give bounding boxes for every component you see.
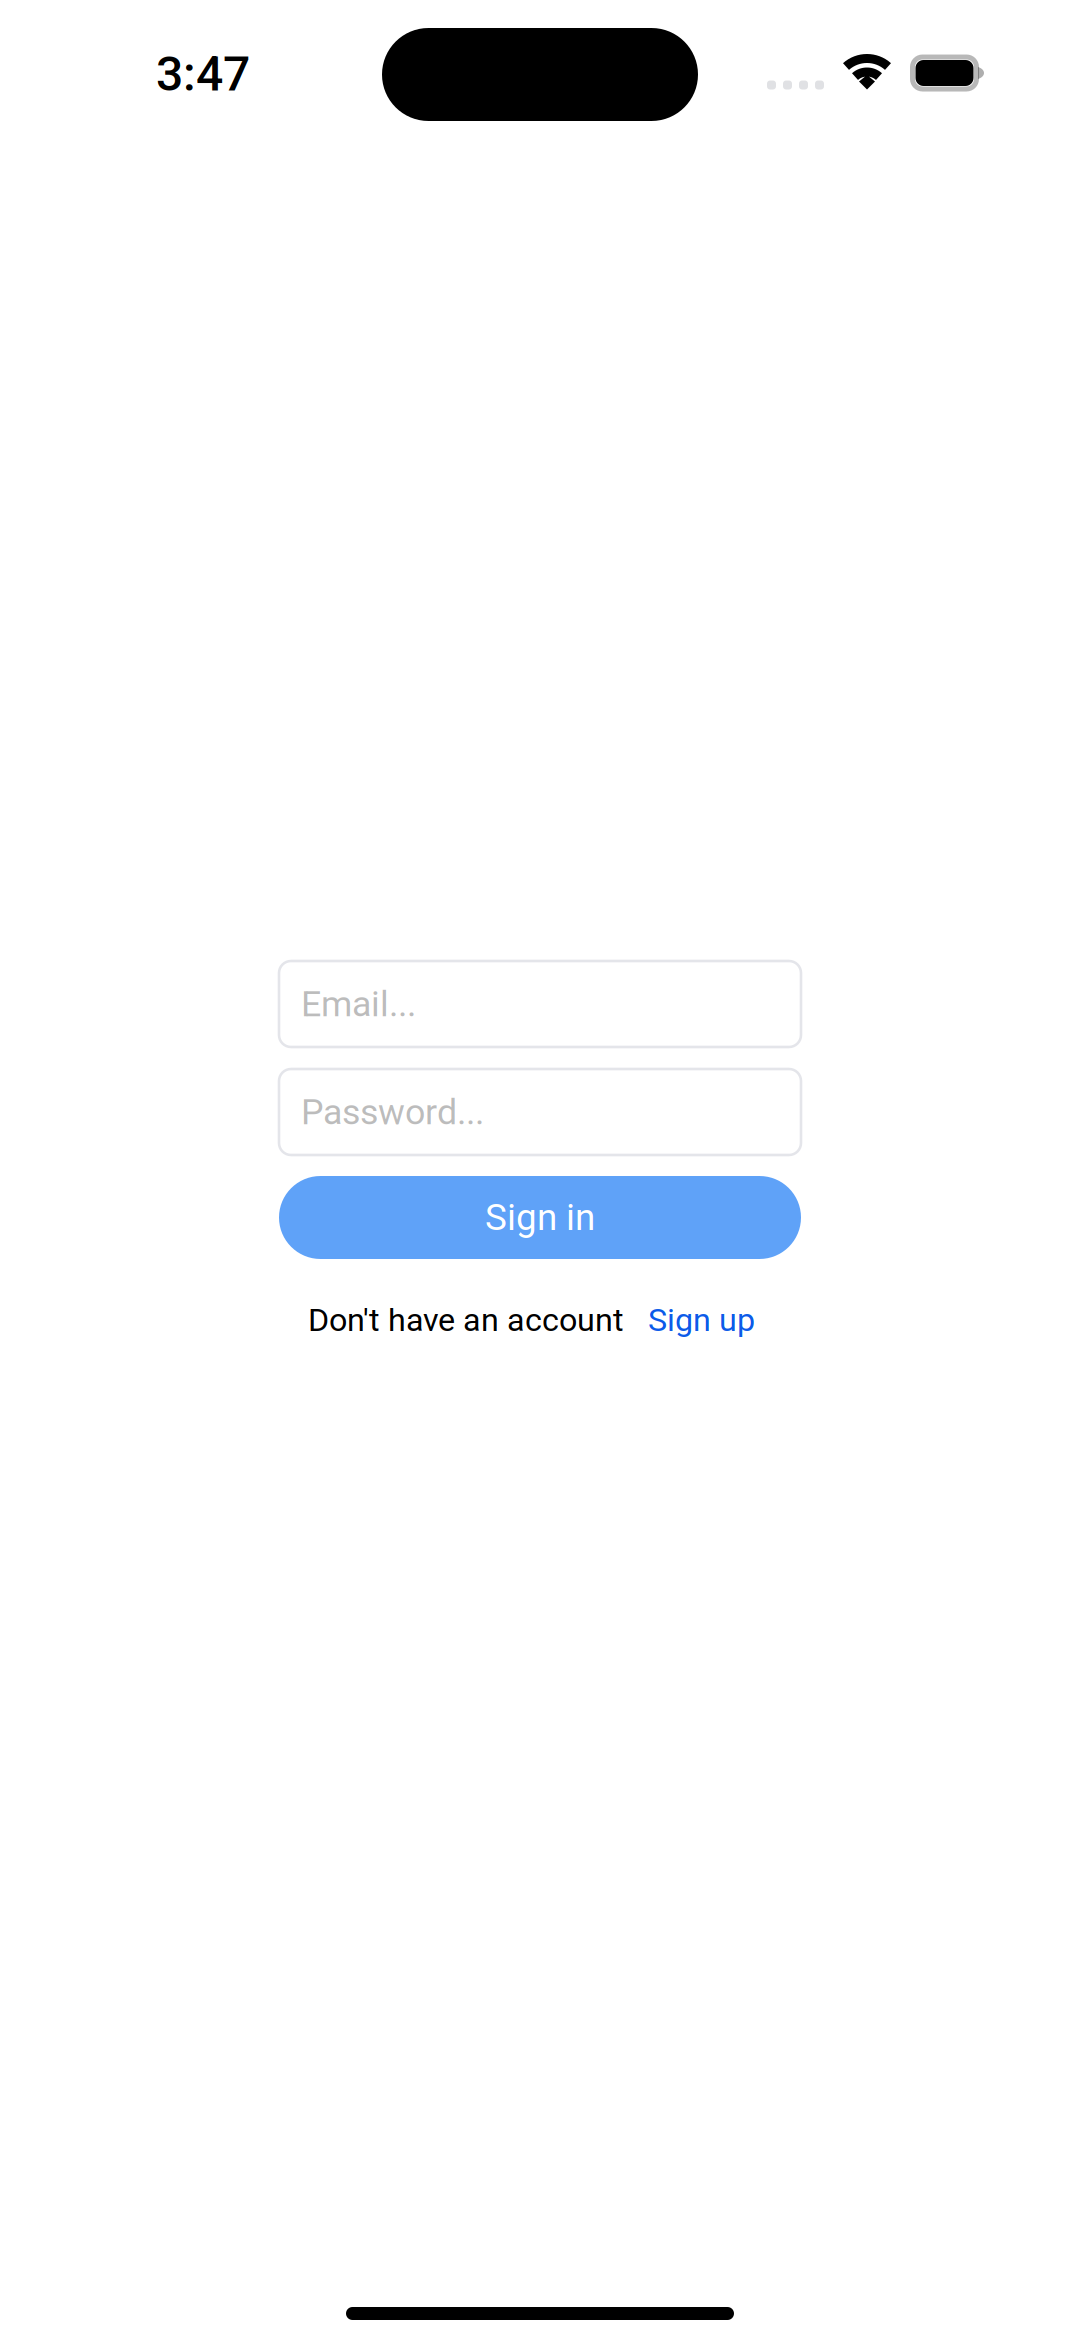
button[interactable]: Password...: [279, 1069, 801, 1155]
button[interactable]: Sign up: [648, 1301, 755, 1339]
staticText: Email...: [301, 983, 416, 1025]
button[interactable]: Email...: [279, 961, 801, 1047]
staticText: Password...: [301, 1091, 484, 1133]
staticText: Sign up: [648, 1301, 755, 1339]
staticText: Sign in: [485, 1196, 595, 1239]
staticText: 3:47: [156, 46, 250, 102]
staticText: Don't have an account: [308, 1301, 624, 1339]
button[interactable]: Sign in: [279, 1176, 801, 1259]
